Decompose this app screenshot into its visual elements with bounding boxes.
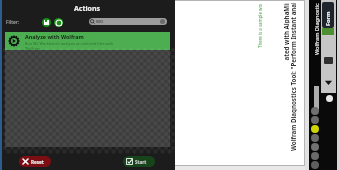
- staticText: Filter:: [6, 19, 20, 26]
- button[interactable]: Analyze with Wolfram: [5, 32, 170, 50]
- button[interactable]: Layers: [326, 95, 333, 102]
- button[interactable]: Tool: [311, 125, 319, 133]
- staticText: There is a sample workflow set.: [257, 4, 263, 48]
- button[interactable]: Reset: [19, 156, 51, 167]
- staticText: Wolfram Diagnostics Tool: "Perform Insta…: [289, 3, 297, 151]
- button[interactable]: Tool: [311, 152, 319, 160]
- staticText: Start: [135, 159, 147, 165]
- staticText: ated with AlphaMiner": [281, 3, 289, 60]
- staticText: Form: [324, 11, 332, 26]
- staticText: Run WL Workbench analysis on selected fi…: [25, 41, 114, 46]
- staticText: Wolfram.: [25, 46, 42, 51]
- button[interactable]: Start: [123, 156, 155, 167]
- staticText: Analyze with Wolfram: [25, 33, 84, 40]
- button[interactable]: Tool: [311, 134, 319, 142]
- button[interactable]: Tool: [311, 116, 319, 124]
- button[interactable]: Tool: [311, 143, 319, 151]
- button[interactable]: Form: [322, 2, 334, 28]
- button[interactable]: Tool: [311, 107, 319, 115]
- other: Scroll down: [324, 78, 333, 87]
- staticText: wo: [96, 18, 103, 25]
- button[interactable]: wo: [89, 18, 167, 25]
- button[interactable]: Save filter: [42, 18, 51, 27]
- button[interactable]: Reset filter: [54, 18, 63, 27]
- staticText: Wolfram Diagnostics: [313, 3, 321, 55]
- button[interactable]: Tool: [311, 161, 319, 169]
- button[interactable]: Scroll: [324, 57, 333, 64]
- staticText: Actions: [74, 4, 101, 13]
- staticText: Reset: [31, 159, 44, 165]
